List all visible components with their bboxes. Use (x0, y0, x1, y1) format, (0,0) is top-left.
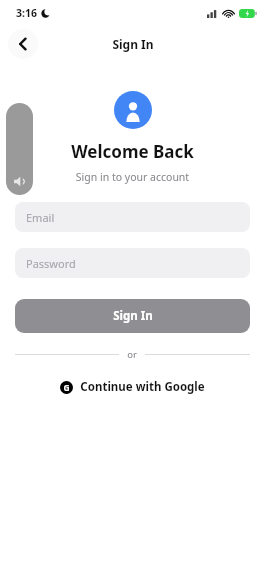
button[interactable]: Password (15, 248, 250, 278)
staticText: Sign In (112, 36, 154, 52)
button[interactable]: G (15, 370, 250, 404)
staticText: Sign In (113, 308, 153, 324)
button[interactable]: Back (8, 29, 38, 59)
button[interactable]: Sign In (15, 299, 250, 333)
button[interactable]: Email (15, 202, 250, 232)
staticText: Continue with Google (80, 379, 205, 395)
staticText: Sign in to your account (0, 170, 265, 184)
staticText: Welcome Back (0, 140, 265, 163)
staticText: G (63, 382, 70, 394)
staticText: 3:16 (16, 6, 37, 20)
staticText: Password (26, 256, 76, 271)
staticText: or (127, 348, 137, 360)
staticText: Email (26, 210, 55, 225)
